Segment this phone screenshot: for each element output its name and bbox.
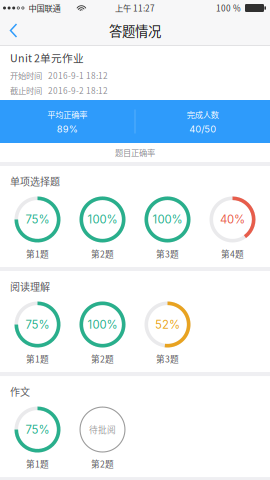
staticText: 阅读理解 (10, 279, 50, 293)
staticText: 40% (220, 213, 245, 226)
button[interactable]: 75% (5, 196, 70, 260)
staticText: 单项选择题 (10, 174, 60, 188)
staticText: 100% (87, 318, 117, 331)
staticText: 第1题 (26, 247, 49, 260)
staticText: 75% (25, 318, 49, 331)
staticText: 89% (57, 123, 78, 135)
staticText: 2016-9-2 18:12 (48, 84, 108, 96)
staticText: 第2题 (91, 352, 114, 365)
staticText: 第3题 (156, 352, 179, 365)
staticText: 完成人数 (187, 108, 219, 120)
staticText: 100 % (216, 2, 241, 14)
staticText: 第1题 (26, 457, 49, 470)
staticText: 开始时间 (10, 69, 42, 81)
button[interactable]: 待批阅 (70, 406, 135, 470)
button[interactable]: 100% (70, 301, 135, 365)
staticText: 截止时间 (10, 84, 42, 96)
staticText: 40/50 (189, 123, 216, 135)
staticText: 第2题 (91, 247, 114, 260)
staticText: 第1题 (26, 352, 49, 365)
staticText: 第4题 (221, 247, 244, 260)
staticText: 上午 11:27 (115, 2, 155, 14)
staticText: 作文 (10, 384, 30, 399)
staticText: 2016-9-1 18:12 (48, 69, 108, 81)
staticText: 平均正确率 (47, 108, 87, 120)
staticText: 中国联通 (28, 2, 60, 14)
staticText: 100% (87, 213, 117, 226)
staticText: 75% (25, 213, 49, 226)
staticText: 75% (25, 423, 49, 436)
staticText: 待批阅 (89, 423, 116, 436)
staticText: 52% (155, 318, 180, 331)
button[interactable]: 52% (135, 301, 200, 365)
button[interactable]: 75% (5, 301, 70, 365)
button[interactable]: 40% (200, 196, 265, 260)
staticText: Unit 2单元作业 (10, 50, 84, 65)
button[interactable]: 100% (135, 196, 200, 260)
staticText: 100% (152, 213, 182, 226)
staticText: 第2题 (91, 457, 114, 470)
staticText: 答题情况 (109, 21, 161, 40)
button[interactable]: 100% (70, 196, 135, 260)
button[interactable]: Back (0, 15, 31, 45)
staticText: 第3题 (156, 247, 179, 260)
button[interactable]: 75% (5, 406, 70, 470)
staticText: 题目正确率 (115, 146, 155, 158)
